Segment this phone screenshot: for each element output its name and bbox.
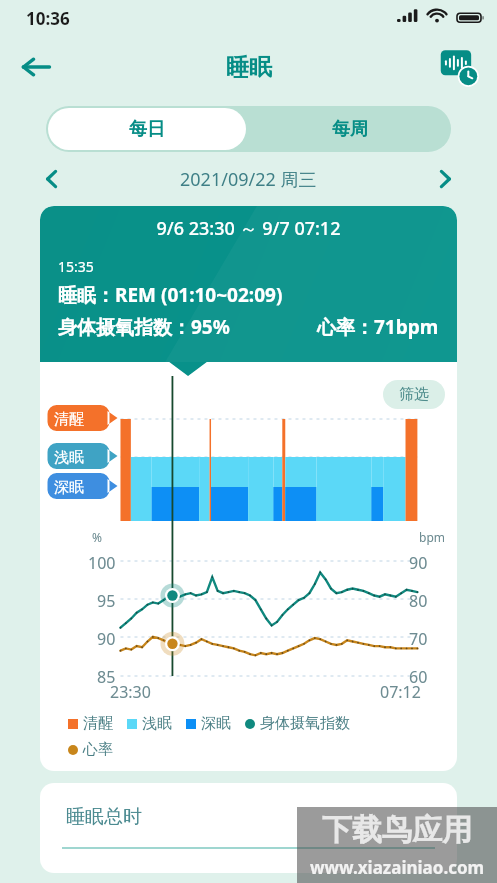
staticText: 15:35 bbox=[58, 257, 94, 276]
staticText: 心率：71bpm bbox=[317, 314, 439, 340]
staticText: 70 bbox=[409, 628, 428, 650]
staticText: 90 bbox=[409, 552, 428, 574]
staticText: 清醒 bbox=[83, 714, 113, 733]
staticText: 清醒 bbox=[54, 410, 84, 429]
staticText: 筛选 bbox=[399, 385, 429, 404]
button[interactable]: Previous day bbox=[34, 162, 70, 196]
staticText: 身体摄氧指数 bbox=[260, 714, 350, 733]
staticText: 2021/09/22 周三 bbox=[180, 167, 317, 192]
staticText: 深眠 bbox=[54, 478, 84, 497]
staticText: 60 bbox=[409, 666, 428, 688]
staticText: 每日 bbox=[129, 118, 165, 141]
staticText: 浅眠 bbox=[142, 714, 172, 733]
staticText: www.xiazainiao.com bbox=[310, 856, 485, 879]
staticText: 10:36 bbox=[26, 7, 70, 30]
button[interactable]: Back bbox=[12, 43, 60, 91]
staticText: % bbox=[92, 529, 102, 545]
staticText: 睡眠：REM (01:10~02:09) bbox=[58, 282, 283, 308]
staticText: 95 bbox=[97, 590, 116, 612]
staticText: 下载鸟应用 bbox=[322, 811, 472, 849]
staticText: 80 bbox=[409, 590, 428, 612]
staticText: 身体摄氧指数：95% bbox=[58, 314, 230, 340]
staticText: 90 bbox=[97, 628, 116, 650]
staticText: 睡眠总时 bbox=[66, 805, 142, 829]
staticText: 85 bbox=[97, 666, 116, 688]
button[interactable]: 筛选 bbox=[383, 380, 445, 409]
staticText: 浅眠 bbox=[54, 448, 84, 467]
staticText: 07:12 bbox=[380, 681, 421, 703]
staticText: 9/6 23:30 ～ 9/7 07:12 bbox=[58, 216, 439, 241]
staticText: 心率 bbox=[83, 740, 113, 759]
button[interactable]: 每日 bbox=[48, 108, 246, 150]
button[interactable]: Sleep recording bbox=[435, 43, 483, 91]
button[interactable]: 每周 bbox=[248, 106, 451, 152]
staticText: 睡眠 bbox=[226, 53, 272, 82]
staticText: 深眠 bbox=[201, 714, 231, 733]
staticText: 每周 bbox=[332, 118, 368, 141]
staticText: 100 bbox=[88, 552, 116, 574]
staticText: bpm bbox=[419, 529, 445, 545]
staticText: 23:30 bbox=[110, 681, 151, 703]
button[interactable]: Next day bbox=[427, 162, 463, 196]
